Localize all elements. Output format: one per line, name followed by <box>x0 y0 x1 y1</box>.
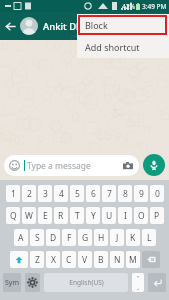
staticText: 4 <box>59 188 64 200</box>
staticText: 3:49 PM <box>142 2 167 11</box>
button[interactable]: B <box>94 251 108 268</box>
button[interactable]: Back <box>0 16 20 36</box>
button[interactable]: C <box>62 251 76 268</box>
button[interactable]: Sym <box>3 273 21 292</box>
staticText: 0 <box>155 188 160 200</box>
button[interactable]: R <box>54 207 68 224</box>
button[interactable]: Block <box>77 14 169 36</box>
button[interactable]: 3 <box>38 185 52 202</box>
button[interactable]: 7 <box>102 185 116 202</box>
button[interactable]: J <box>110 229 124 246</box>
button[interactable]: Q <box>6 207 20 224</box>
button[interactable]: V <box>78 251 92 268</box>
staticText: L <box>147 232 152 244</box>
staticText: Ankit Dk <box>43 20 82 33</box>
button[interactable]: M <box>126 251 140 268</box>
staticText: O <box>138 210 145 222</box>
staticText: F <box>67 232 72 244</box>
staticText: T <box>75 210 80 222</box>
staticText: C <box>66 254 72 266</box>
staticText: " <box>137 274 140 281</box>
staticText: 42% <box>122 2 135 11</box>
staticText: 3 <box>43 188 48 200</box>
staticText: X <box>51 254 56 266</box>
staticText: Type a message <box>27 160 91 172</box>
staticText: Block <box>85 19 108 31</box>
button[interactable]: F <box>62 229 76 246</box>
staticText: N <box>114 254 121 266</box>
staticText: V <box>82 254 88 266</box>
button[interactable]: 4 <box>54 185 68 202</box>
staticText: D <box>50 232 57 244</box>
staticText: E <box>43 210 48 222</box>
staticText: English(US) <box>69 278 104 287</box>
button[interactable]: X <box>46 251 60 268</box>
staticText: 9 <box>139 188 144 200</box>
staticText: B <box>98 254 104 266</box>
button[interactable]: E <box>38 207 52 224</box>
staticText: 5 <box>75 188 80 200</box>
staticText: 7 <box>107 188 112 200</box>
button[interactable]: Backspace <box>142 251 160 268</box>
button[interactable]: English(US) <box>44 273 128 292</box>
button[interactable]: L <box>142 229 156 246</box>
button[interactable]: Record voice message <box>143 154 165 176</box>
staticText: K <box>130 232 136 244</box>
button[interactable]: N <box>110 251 124 268</box>
button[interactable]: 9 <box>134 185 148 202</box>
staticText: Add shortcut <box>85 41 140 53</box>
button[interactable]: S <box>30 229 44 246</box>
staticText: Q <box>10 210 17 222</box>
button[interactable]: Shift <box>10 251 28 268</box>
button[interactable]: A <box>14 229 28 246</box>
button[interactable]: Z <box>30 251 44 268</box>
staticText: R <box>58 210 64 222</box>
button[interactable]: Type a message <box>4 155 139 176</box>
staticText: Sym <box>5 278 19 288</box>
staticText: 1 <box>11 188 16 200</box>
button[interactable]: " <box>132 273 144 292</box>
staticText: . <box>137 281 140 292</box>
button[interactable]: T <box>70 207 84 224</box>
staticText: 8 <box>123 188 128 200</box>
button[interactable]: 8 <box>118 185 132 202</box>
button[interactable]: Add shortcut <box>77 36 169 58</box>
staticText: I <box>124 210 127 222</box>
staticText: Y <box>91 210 96 222</box>
staticText: 2 <box>27 188 32 200</box>
button[interactable]: Camera <box>122 160 134 172</box>
staticText: W <box>25 210 33 222</box>
button[interactable]: P <box>150 207 164 224</box>
staticText: G <box>82 232 89 244</box>
button[interactable]: H <box>94 229 108 246</box>
button[interactable]: D <box>46 229 60 246</box>
button[interactable]: Enter <box>148 273 166 292</box>
button[interactable]: O <box>134 207 148 224</box>
button[interactable]: 6 <box>86 185 100 202</box>
button[interactable]: I <box>118 207 132 224</box>
button[interactable]: Keyboard settings <box>25 273 40 292</box>
staticText: S <box>35 232 40 244</box>
button[interactable]: G <box>78 229 92 246</box>
button[interactable]: Y <box>86 207 100 224</box>
button[interactable]: 0 <box>150 185 164 202</box>
button[interactable]: 5 <box>70 185 84 202</box>
button[interactable]: 2 <box>22 185 36 202</box>
button[interactable]: Contact photo <box>20 17 38 35</box>
staticText: J <box>116 232 119 244</box>
staticText: 6 <box>91 188 96 200</box>
staticText: M <box>129 254 137 266</box>
staticText: U <box>106 210 113 222</box>
button[interactable]: U <box>102 207 116 224</box>
button[interactable]: K <box>126 229 140 246</box>
button[interactable]: Ankit Dk <box>43 12 169 40</box>
staticText: P <box>154 210 160 222</box>
staticText: Z <box>35 254 40 266</box>
staticText: H <box>98 232 105 244</box>
button[interactable]: W <box>22 207 36 224</box>
staticText: A <box>18 232 24 244</box>
button[interactable]: 1 <box>6 185 20 202</box>
